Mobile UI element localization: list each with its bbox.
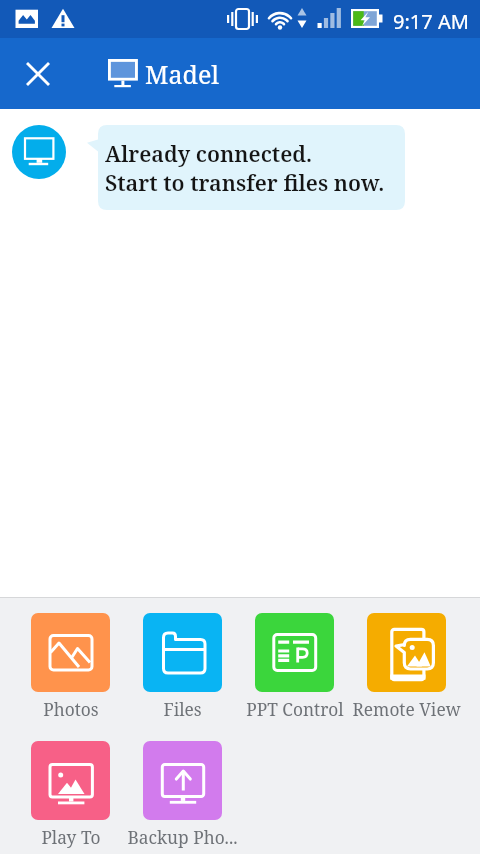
staticText: Files [163,698,202,722]
button[interactable] [127,741,238,851]
staticText: Start to transfer files now. [105,168,385,198]
button[interactable] [351,613,462,723]
button[interactable] [15,741,126,851]
button[interactable]: Close [14,50,61,97]
staticText: Photos [43,698,99,722]
button[interactable] [15,613,126,723]
staticText: Play To [41,826,101,850]
button[interactable] [127,613,238,723]
staticText: Backup Pho... [127,826,238,850]
staticText: PPT Control [246,698,344,722]
staticText: 9:17 AM [393,8,469,35]
staticText: Remote View [352,698,461,722]
staticText: Madel [145,57,220,91]
button[interactable]: Connected device [12,125,66,179]
button[interactable] [239,613,350,723]
staticText: Already connected. [105,139,313,169]
